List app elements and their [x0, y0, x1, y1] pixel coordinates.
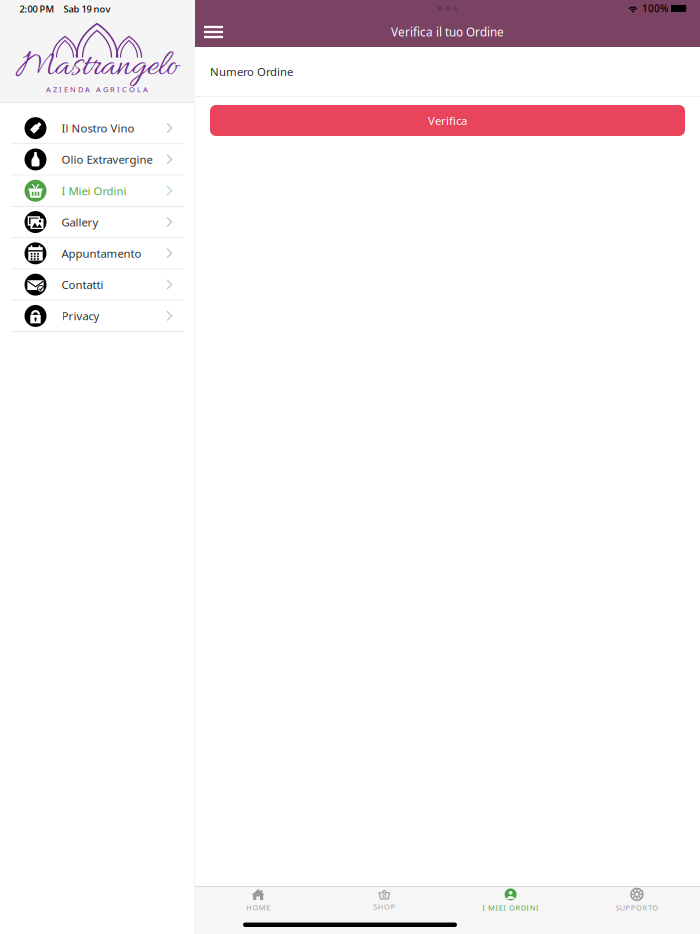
staticText: Olio Extravergine	[61, 152, 152, 167]
button[interactable]: Contatti	[0, 269, 194, 301]
staticText: I MIEI ORDINI	[482, 902, 539, 913]
staticText: 100%	[642, 2, 668, 15]
button[interactable]: Gallery	[0, 207, 194, 238]
staticText: HOME	[246, 902, 270, 912]
button[interactable]: SUPPORTO	[574, 887, 700, 914]
staticText: 2:00 PM	[19, 3, 54, 15]
button[interactable]: Appuntamento	[0, 238, 194, 269]
button[interactable]: Apri il menu	[195, 18, 232, 46]
staticText: Il Nostro Vino	[61, 120, 134, 136]
staticText: A Z I E N D A A G R I C O L A	[46, 84, 148, 94]
staticText: Numero Ordine	[210, 64, 293, 79]
staticText: SHOP	[373, 901, 395, 912]
button[interactable]: Il Nostro Vino	[0, 113, 194, 144]
button[interactable]: I Miei Ordini	[0, 176, 194, 207]
staticText: Privacy	[61, 308, 99, 324]
staticText: Sab 19 nov	[63, 3, 110, 15]
staticText: Verifica	[428, 113, 467, 128]
staticText: Verifica il tuo Ordine	[391, 24, 504, 40]
staticText: I Miei Ordini	[61, 183, 126, 198]
staticText: Contatti	[61, 277, 103, 292]
staticText: SUPPORTO	[615, 902, 658, 913]
staticText: Appuntamento	[61, 246, 141, 261]
button[interactable]: Privacy	[0, 301, 194, 332]
button[interactable]: SHOP	[321, 887, 447, 914]
button[interactable]: HOME	[195, 887, 321, 914]
staticText: Mastrangelo	[16, 44, 178, 89]
button[interactable]: Olio Extravergine	[0, 144, 194, 176]
staticText: Gallery	[61, 214, 98, 230]
button[interactable]: I MIEI ORDINI	[447, 887, 574, 914]
button[interactable]: Verifica	[210, 105, 685, 136]
